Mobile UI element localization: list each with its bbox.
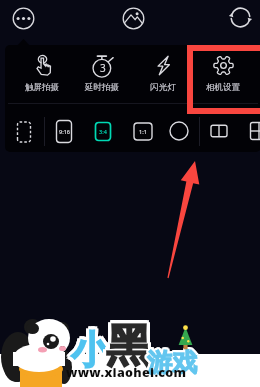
button[interactable]: Auto frame (13, 120, 35, 144)
staticText: 游戏 (148, 349, 198, 380)
staticText: 游戏 (147, 349, 197, 380)
staticText: 黑 (106, 315, 151, 372)
staticText: 小 (68, 325, 106, 373)
staticText: 1:1 (139, 128, 147, 135)
button[interactable]: More options (12, 7, 35, 30)
staticText: 触屏拍摄 (25, 82, 59, 93)
staticText: 3 (100, 61, 106, 75)
staticText: 黑 (109, 317, 154, 374)
staticText: 黑 (103, 318, 148, 375)
staticText: 游戏 (147, 345, 197, 376)
staticText: 黑 (103, 317, 148, 374)
staticText: 延时拍摄 (85, 82, 119, 93)
button[interactable]: Split view (207, 120, 231, 142)
staticText: 黑 (108, 321, 153, 378)
button[interactable]: Grid view (247, 119, 260, 143)
button[interactable]: 3:4 (91, 120, 115, 143)
button[interactable]: Circle (167, 119, 191, 143)
staticText: 黑 (103, 320, 148, 377)
staticText: 小 (73, 329, 111, 377)
staticText: 小 (74, 325, 112, 373)
button[interactable]: Photo filter (122, 7, 145, 30)
button[interactable]: 1:1 (131, 120, 155, 143)
staticText: 游戏 (149, 348, 199, 379)
staticText: 小 (71, 326, 109, 374)
staticText: 小 (71, 329, 109, 377)
button[interactable]: 9:16 (52, 119, 76, 144)
button[interactable]: Switch camera (229, 6, 252, 29)
staticText: www.xiaohei.com (66, 364, 187, 381)
staticText: 游戏 (145, 348, 195, 379)
staticText: 9:16 (59, 128, 70, 135)
staticText: 游戏 (149, 346, 199, 377)
staticText: 黑 (109, 318, 154, 375)
staticText: 小 (68, 328, 106, 376)
button[interactable]: 3 (74, 55, 130, 100)
staticText: 3:4 (99, 128, 107, 135)
staticText: 小 (70, 329, 108, 377)
staticText: 小 (74, 326, 112, 374)
staticText: 小 (70, 323, 108, 371)
staticText: 黑 (105, 321, 150, 378)
staticText: 游戏 (149, 347, 199, 378)
staticText: 黑 (106, 318, 151, 375)
staticText: 小 (73, 323, 111, 371)
staticText: 小 (71, 323, 109, 371)
staticText: 游戏 (145, 347, 195, 378)
staticText: 游戏 (148, 345, 198, 376)
button[interactable]: 闪光灯 (135, 55, 191, 100)
staticText: 游戏 (146, 345, 196, 376)
staticText: 黑 (106, 321, 151, 378)
staticText: 小 (68, 326, 106, 374)
staticText: 相机设置 (206, 82, 240, 93)
staticText: 小 (74, 328, 112, 376)
staticText: 闪光灯 (150, 82, 176, 93)
staticText: 游戏 (145, 346, 195, 377)
button[interactable]: 触屏拍摄 (14, 55, 70, 100)
staticText: 游戏 (146, 349, 196, 380)
button[interactable]: 相机设置 (195, 55, 251, 100)
staticText: 黑 (105, 315, 150, 372)
staticText: 游戏 (147, 347, 197, 378)
staticText: 黑 (108, 315, 153, 372)
staticText: 黑 (109, 320, 154, 377)
